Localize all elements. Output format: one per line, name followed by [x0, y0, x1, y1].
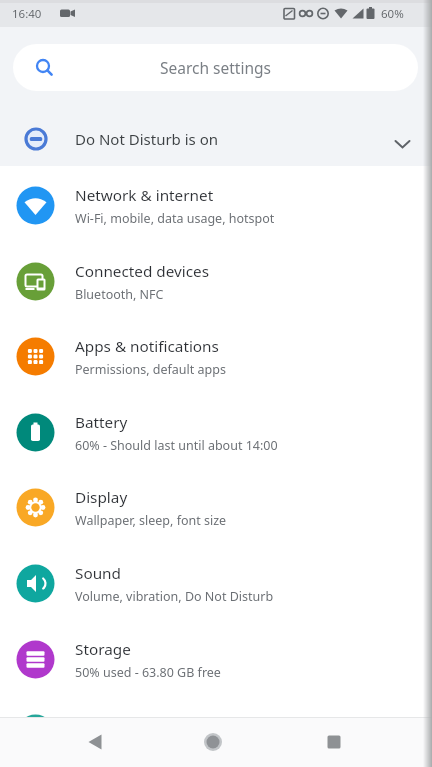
- staticText: Storage: [75, 639, 131, 660]
- button[interactable]: [73, 720, 117, 764]
- button[interactable]: Sound: [0, 546, 432, 621]
- staticText: Display: [75, 487, 128, 508]
- staticText: Volume, vibration, Do Not Disturb: [75, 588, 274, 605]
- staticText: Wi-Fi, mobile, data usage, hotspot: [75, 210, 275, 227]
- staticText: Sound: [75, 563, 121, 584]
- staticText: 50% used - 63.80 GB free: [75, 664, 221, 681]
- button[interactable]: Network & internet: [0, 168, 432, 243]
- staticText: Do Not Disturb is on: [75, 129, 219, 149]
- button[interactable]: Storage: [0, 622, 432, 697]
- button[interactable]: Display: [0, 470, 432, 545]
- staticText: 60%: [381, 6, 404, 22]
- staticText: Network & internet: [75, 185, 214, 206]
- button[interactable]: [191, 720, 235, 764]
- button[interactable]: Search settings: [13, 44, 418, 91]
- staticText: Connected devices: [75, 261, 210, 282]
- staticText: Apps & notifications: [75, 336, 219, 357]
- staticText: Permissions, default apps: [75, 361, 226, 378]
- button[interactable]: Battery: [0, 395, 432, 470]
- staticText: Search settings: [160, 57, 271, 78]
- staticText: Bluetooth, NFC: [75, 286, 164, 303]
- button[interactable]: [312, 720, 356, 764]
- button[interactable]: Do Not Disturb is on: [0, 112, 432, 166]
- button[interactable]: Connected devices: [0, 244, 432, 319]
- staticText: 60% - Should last until about 14:00: [75, 437, 278, 454]
- staticText: 16:40: [12, 6, 42, 22]
- staticText: Wallpaper, sleep, font size: [75, 512, 227, 529]
- button[interactable]: Apps & notifications: [0, 319, 432, 394]
- staticText: Battery: [75, 412, 128, 433]
